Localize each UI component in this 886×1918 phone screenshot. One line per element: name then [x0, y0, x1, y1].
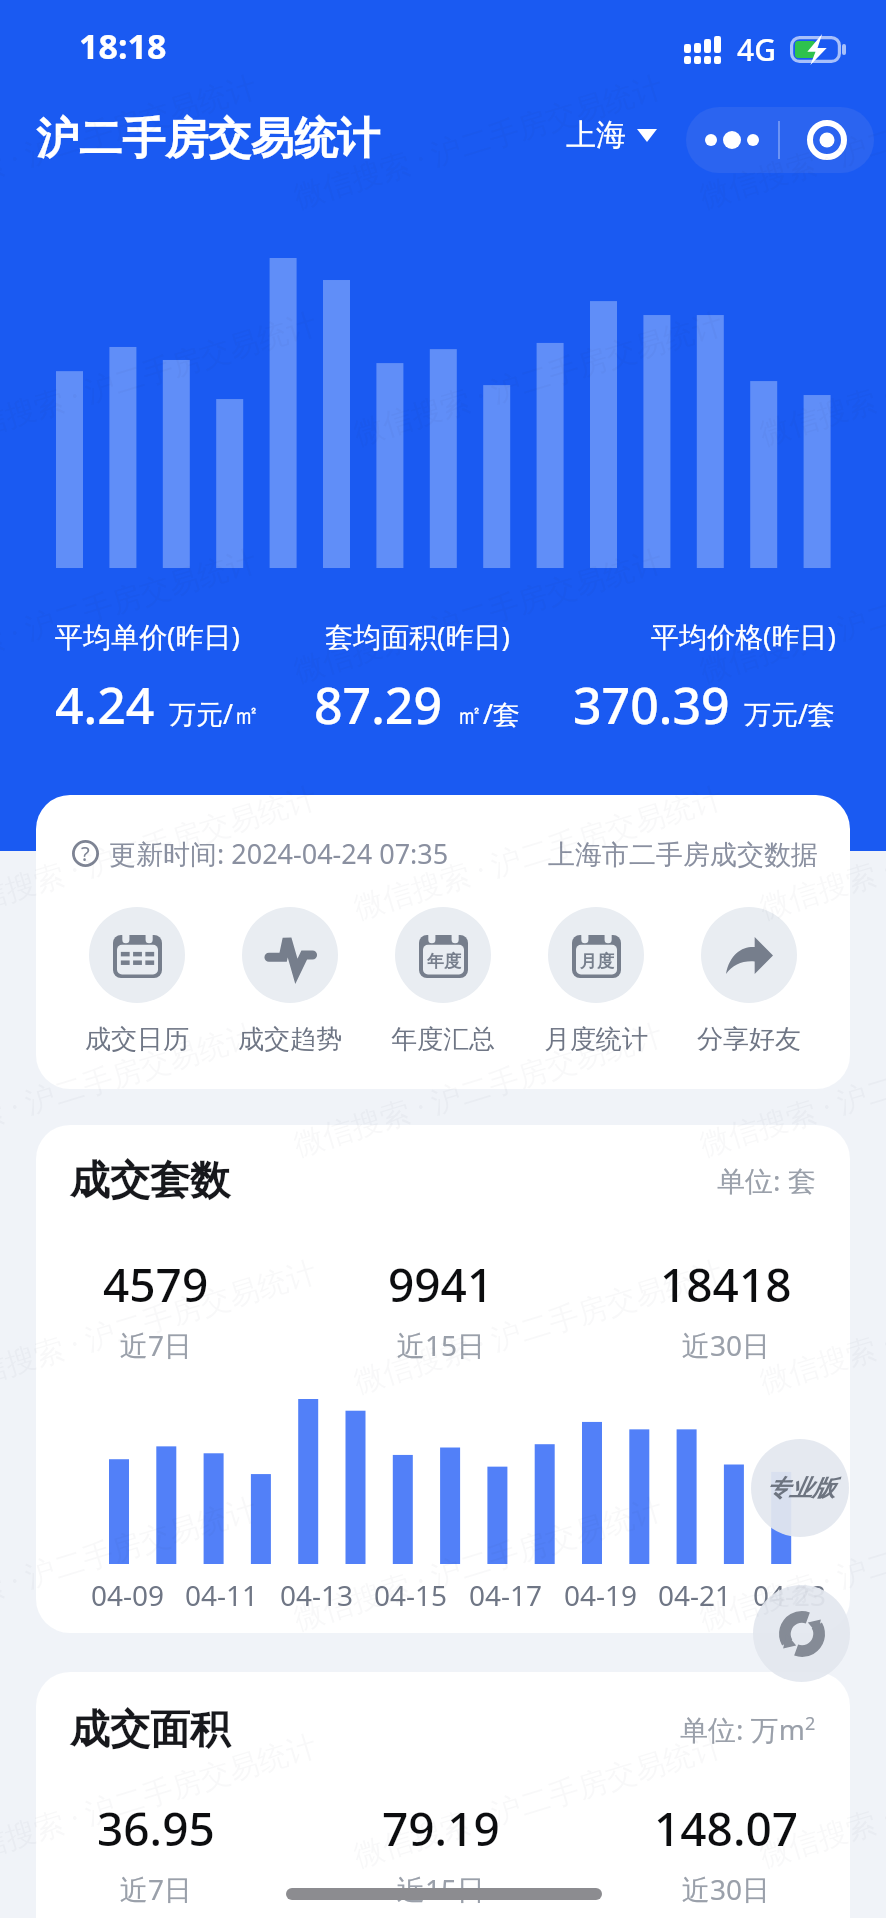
staticText: 微信搜索 · 沪二手房交易统计: [694, 539, 886, 690]
staticText: 79.19: [382, 1797, 500, 1860]
button[interactable]: More: [686, 107, 778, 173]
button[interactable]: 分享好友: [677, 907, 821, 1056]
staticText: ㎡/套: [456, 695, 521, 732]
staticText: ?: [81, 840, 90, 867]
staticText: 上海: [566, 116, 626, 154]
staticText: 分享好友: [697, 1023, 801, 1056]
staticText: 成交套数: [70, 1155, 230, 1205]
staticText: 平均价格(昨日): [651, 617, 836, 655]
button[interactable]: 成交趋势: [218, 907, 362, 1056]
staticText: 微信搜索 · 沪二手房交易统计: [0, 302, 322, 453]
button[interactable]: Close: [780, 107, 874, 173]
staticText: 年度: [427, 951, 461, 972]
staticText: 2: [805, 1711, 816, 1736]
staticText: 04-11: [185, 1576, 259, 1614]
staticText: 月度: [580, 951, 614, 972]
staticText: 近30日: [682, 1326, 771, 1364]
staticText: 微信搜索 · 沪二手房交易统计: [754, 1250, 886, 1401]
button[interactable]: 上海: [566, 116, 657, 154]
staticText: 微信搜索 · 沪二手房交易统计: [0, 1250, 322, 1401]
button[interactable]: Refresh: [753, 1585, 850, 1682]
staticText: 微信搜索 · 沪二手房交易统计: [288, 1487, 668, 1638]
staticText: 上海市二手房成交数据: [548, 838, 818, 872]
staticText: 微信搜索 · 沪二手房交易统计: [288, 1013, 668, 1164]
staticText: 成交日历: [85, 1023, 189, 1056]
staticText: 近7日: [120, 1870, 193, 1908]
staticText: 近30日: [682, 1870, 771, 1908]
staticText: 成交趋势: [238, 1023, 342, 1056]
staticText: 04-09: [91, 1576, 165, 1614]
staticText: 近15日: [397, 1870, 486, 1908]
staticText: 万元/套: [744, 695, 836, 732]
staticText: 月度统计: [544, 1023, 648, 1056]
staticText: 微信搜索 · 沪二手房交易统计: [0, 1013, 262, 1164]
staticText: 更新时间: 2024-04-24 07:35: [109, 835, 449, 872]
staticText: 万元/㎡: [169, 695, 261, 732]
staticText: 成交面积: [70, 1704, 230, 1754]
staticText: 4.24: [55, 671, 155, 739]
staticText: 平均单价(昨日): [55, 617, 240, 655]
staticText: 微信搜索 · 沪二手房交易统计: [348, 776, 728, 927]
staticText: 148.07: [654, 1797, 799, 1860]
staticText: 04-13: [280, 1576, 354, 1614]
staticText: 年度汇总: [391, 1023, 495, 1056]
staticText: 近7日: [120, 1326, 193, 1364]
staticText: 微信搜索 · 沪二手房交易统计: [0, 1487, 262, 1638]
staticText: 18418: [660, 1253, 792, 1316]
staticText: 04-19: [564, 1576, 638, 1614]
staticText: 370.39: [573, 671, 730, 739]
staticText: 微信搜索 · 沪二手房交易统计: [0, 65, 262, 216]
staticText: 微信搜索 · 沪二手房交易统计: [288, 65, 668, 216]
button[interactable]: 专业版: [751, 1439, 849, 1537]
staticText: 微信搜索 · 沪二手房交易统计: [0, 1724, 322, 1875]
staticText: 沪二手房交易统计: [36, 112, 380, 166]
staticText: 9941: [388, 1253, 494, 1316]
staticText: 04-21: [658, 1576, 732, 1614]
staticText: 微信搜索 · 沪二手房交易统计: [694, 65, 886, 216]
staticText: 微信搜索 · 沪二手房交易统计: [754, 776, 886, 927]
button[interactable]: 成交日历: [65, 907, 209, 1056]
staticText: 专业版: [766, 1474, 835, 1503]
staticText: 04-15: [374, 1576, 448, 1614]
staticText: 套均面积(昨日): [325, 617, 510, 655]
staticText: 单位: 万m: [680, 1710, 805, 1748]
staticText: 36.95: [97, 1797, 215, 1860]
staticText: 微信搜索 · 沪二手房交易统计: [348, 302, 728, 453]
staticText: 微信搜索 · 沪二手房交易统计: [288, 539, 668, 690]
staticText: 微信搜索 · 沪二手房交易统计: [348, 1724, 728, 1875]
staticText: 微信搜索 · 沪二手房交易统计: [754, 302, 886, 453]
button[interactable]: 月度: [524, 907, 668, 1056]
staticText: 4G: [737, 29, 776, 70]
staticText: 微信搜索 · 沪二手房交易统计: [754, 1724, 886, 1875]
staticText: 单位: 套: [717, 1161, 816, 1199]
staticText: 微信搜索 · 沪二手房交易统计: [694, 1013, 886, 1164]
staticText: 4579: [103, 1253, 209, 1316]
staticText: 微信搜索 · 沪二手房交易统计: [0, 539, 262, 690]
staticText: 04-17: [469, 1576, 543, 1614]
staticText: 18:18: [79, 23, 167, 69]
staticText: 04-23: [753, 1576, 827, 1614]
staticText: 近15日: [397, 1326, 486, 1364]
staticText: 微信搜索 · 沪二手房交易统计: [694, 1487, 886, 1638]
button[interactable]: 年度: [371, 907, 515, 1056]
staticText: 87.29: [314, 671, 442, 739]
staticText: 微信搜索 · 沪二手房交易统计: [0, 776, 322, 927]
staticText: 微信搜索 · 沪二手房交易统计: [348, 1250, 728, 1401]
